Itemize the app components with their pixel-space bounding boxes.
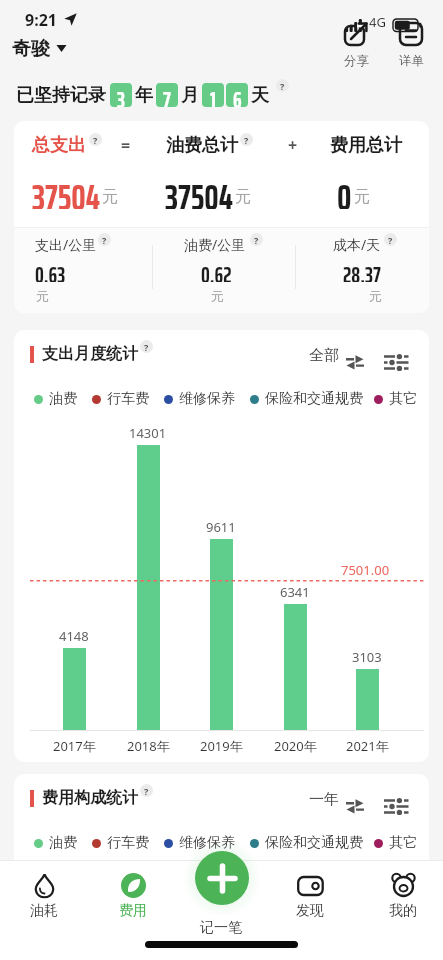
staticText: 费用构成统计 [42,788,138,808]
button[interactable]: 奇骏 [12,35,67,62]
staticText: 2018年 [127,737,170,755]
staticText: 3103 [352,648,382,665]
staticText: 保险和交通规费 [265,834,363,852]
staticText: 费用 [119,902,147,920]
button[interactable] [384,355,409,370]
staticText: 2020年 [274,737,317,755]
staticText: 元 [36,288,49,304]
staticText: 油耗 [30,902,58,920]
staticText: 支出月度统计 [42,344,138,364]
staticText: 元 [102,187,118,207]
staticText: 14301 [129,424,167,441]
staticText: 元 [235,187,251,207]
button[interactable] [346,355,364,369]
staticText: 4148 [59,627,89,644]
staticText: 元 [354,187,370,207]
staticText: 行车费 [107,390,149,408]
staticText: 我的 [389,902,417,920]
staticText: 6341 [280,583,310,600]
staticText: 月 [181,84,199,107]
button[interactable]: 详单 [396,20,426,69]
staticText: ? [244,134,249,146]
staticText: + [288,134,298,156]
staticText: 9611 [206,518,236,535]
staticText: 维修保养 [179,834,235,852]
staticText: 2021年 [346,737,389,755]
staticText: 0.63 [35,258,66,282]
staticText: ? [93,134,98,146]
staticText: 4G [369,13,386,31]
staticText: 总支出 [32,134,86,157]
staticText: ? [144,785,149,797]
staticText: 已坚持记录 [16,84,106,107]
staticText: 费用总计 [330,134,402,157]
staticText: 37504 [165,169,233,209]
staticText: 记一笔 [200,919,242,937]
staticText: 28.37 [343,258,381,282]
staticText: 全部 [309,346,339,365]
button[interactable]: 费用 [89,872,177,920]
staticText: 奇骏 [12,37,50,61]
staticText: 7501.00 [341,561,390,577]
staticText: 2019年 [200,737,243,755]
button[interactable]: 我的 [359,872,443,920]
staticText: = [121,134,131,156]
button[interactable] [346,799,364,813]
staticText: 油费/公里 [184,235,246,254]
staticText: 详单 [399,53,424,69]
staticText: 元 [369,288,382,304]
staticText: 发现 [296,902,324,920]
staticText: 0 [337,169,352,209]
staticText: 6 [233,83,242,107]
staticText: ? [254,234,259,246]
staticText: 其它 [389,390,417,408]
staticText: 一年 [309,790,339,809]
staticText: 其它 [389,834,417,852]
staticText: 天 [251,84,269,107]
staticText: ? [102,234,107,246]
staticText: ? [144,341,149,353]
button[interactable] [195,851,249,905]
staticText: 油费 [49,390,77,408]
staticText: 保险和交通规费 [265,390,363,408]
staticText: 37504 [32,169,100,209]
staticText: 油费 [49,834,77,852]
staticText: 1 [210,83,216,107]
button[interactable]: 分享 [341,20,371,69]
staticText: ? [280,80,285,92]
staticText: 3 [117,83,125,107]
staticText: 9:21 [25,9,57,31]
staticText: 2017年 [53,737,96,755]
staticText: 维修保养 [179,390,235,408]
staticText: 行车费 [107,834,149,852]
staticText: 成本/天 [333,235,381,254]
staticText: 支出/公里 [35,235,97,254]
button[interactable]: 油耗 [0,872,88,920]
staticText: 分享 [344,53,369,69]
staticText: ? [388,234,393,246]
staticText: 0.62 [201,258,232,282]
button[interactable] [384,799,409,814]
staticText: 年 [135,84,153,107]
staticText: 7 [163,83,171,107]
button[interactable]: 发现 [266,872,354,920]
staticText: 油费总计 [166,134,238,157]
staticText: 元 [211,288,224,304]
